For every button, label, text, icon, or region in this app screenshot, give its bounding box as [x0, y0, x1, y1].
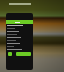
button[interactable] [7, 46, 33, 47]
button[interactable] [7, 49, 33, 50]
button[interactable] [6, 20, 33, 24]
button[interactable]: Primary action [16, 52, 31, 56]
button[interactable] [7, 43, 33, 44]
button[interactable] [7, 25, 33, 26]
button[interactable] [7, 31, 33, 32]
button[interactable] [7, 37, 33, 38]
button[interactable] [7, 28, 33, 29]
button[interactable] [7, 40, 33, 41]
button[interactable]: Secondary action [8, 52, 12, 56]
button[interactable] [7, 34, 33, 35]
